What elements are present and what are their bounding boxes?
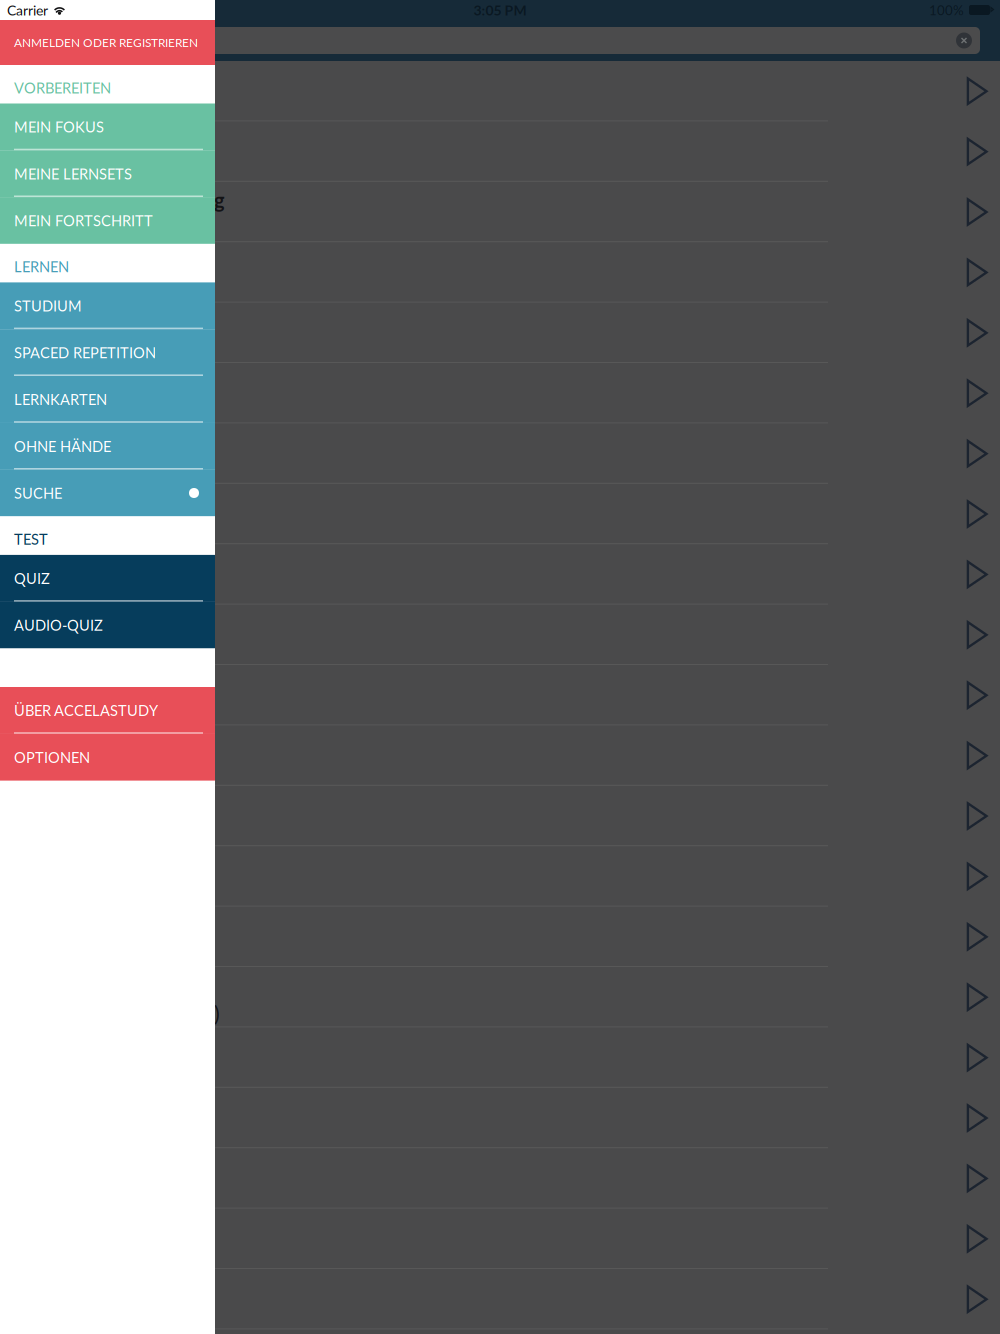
button[interactable]: Play: [966, 198, 988, 226]
button[interactable]: Play: [966, 137, 988, 166]
button[interactable]: SUCHE: [0, 470, 215, 516]
staticText: QUIZ: [14, 569, 50, 587]
button[interactable]: ANMELDEN ODER REGISTRIEREN: [0, 20, 215, 65]
staticText: g: [214, 188, 225, 212]
button[interactable]: Play: [966, 319, 988, 347]
button[interactable]: AUDIO-QUIZ: [0, 602, 215, 648]
staticText: Carrier: [7, 2, 48, 18]
button[interactable]: Play: [966, 77, 988, 105]
staticText: VORBEREITEN: [14, 79, 111, 96]
button[interactable]: Play: [966, 1043, 988, 1072]
staticText: OHNE HÄNDE: [14, 437, 111, 455]
button[interactable]: OHNE HÄNDE: [0, 423, 215, 470]
button[interactable]: Play: [966, 379, 988, 407]
staticText: OPTIONEN: [14, 748, 90, 766]
button[interactable]: Play: [966, 1104, 988, 1132]
button[interactable]: Play: [966, 802, 988, 830]
staticText: 100%: [929, 2, 964, 18]
staticText: MEIN FORTSCHRITT: [14, 212, 153, 229]
button[interactable]: Play: [966, 620, 988, 649]
staticText: MEINE LERNSETS: [14, 165, 132, 182]
staticText: ): [214, 1000, 220, 1026]
button[interactable]: SPACED REPETITION: [0, 329, 215, 376]
staticText: MEIN FOKUS: [14, 118, 104, 136]
staticText: ANMELDEN ODER REGISTRIEREN: [14, 35, 198, 50]
button[interactable]: Play: [966, 1285, 988, 1313]
button[interactable]: MEIN FORTSCHRITT: [0, 197, 215, 244]
button[interactable]: Play: [966, 500, 988, 528]
button[interactable]: Play: [966, 922, 988, 951]
staticText: ÜBER ACCELASTUDY: [14, 702, 158, 719]
button[interactable]: OPTIONEN: [0, 734, 215, 781]
button[interactable]: MEINE LERNSETS: [0, 150, 215, 197]
staticText: LERNKARTEN: [14, 391, 107, 408]
staticText: AUDIO-QUIZ: [14, 616, 103, 634]
button[interactable]: Play: [966, 258, 988, 287]
staticText: STUDIUM: [14, 297, 82, 315]
staticText: LERNEN: [14, 258, 69, 275]
button[interactable]: Play: [966, 862, 988, 891]
button[interactable]: STUDIUM: [0, 282, 215, 329]
button[interactable]: Clear search: [955, 31, 973, 49]
button[interactable]: Play: [966, 741, 988, 770]
button[interactable]: QUIZ: [0, 555, 215, 602]
button[interactable]: Play: [966, 983, 988, 1011]
staticText: 3:05 PM: [473, 2, 526, 18]
button[interactable]: LERNKARTEN: [0, 376, 215, 423]
button[interactable]: ÜBER ACCELASTUDY: [0, 687, 215, 734]
staticText: SUCHE: [14, 484, 62, 502]
button[interactable]: Play: [966, 439, 988, 468]
staticText: TEST: [14, 530, 48, 548]
button[interactable]: MEIN FOKUS: [0, 103, 215, 150]
button[interactable]: Play: [966, 1224, 988, 1253]
button[interactable]: Play: [966, 560, 988, 589]
staticText: SPACED REPETITION: [14, 344, 156, 361]
button[interactable]: Play: [966, 681, 988, 709]
button[interactable]: Play: [966, 1164, 988, 1193]
